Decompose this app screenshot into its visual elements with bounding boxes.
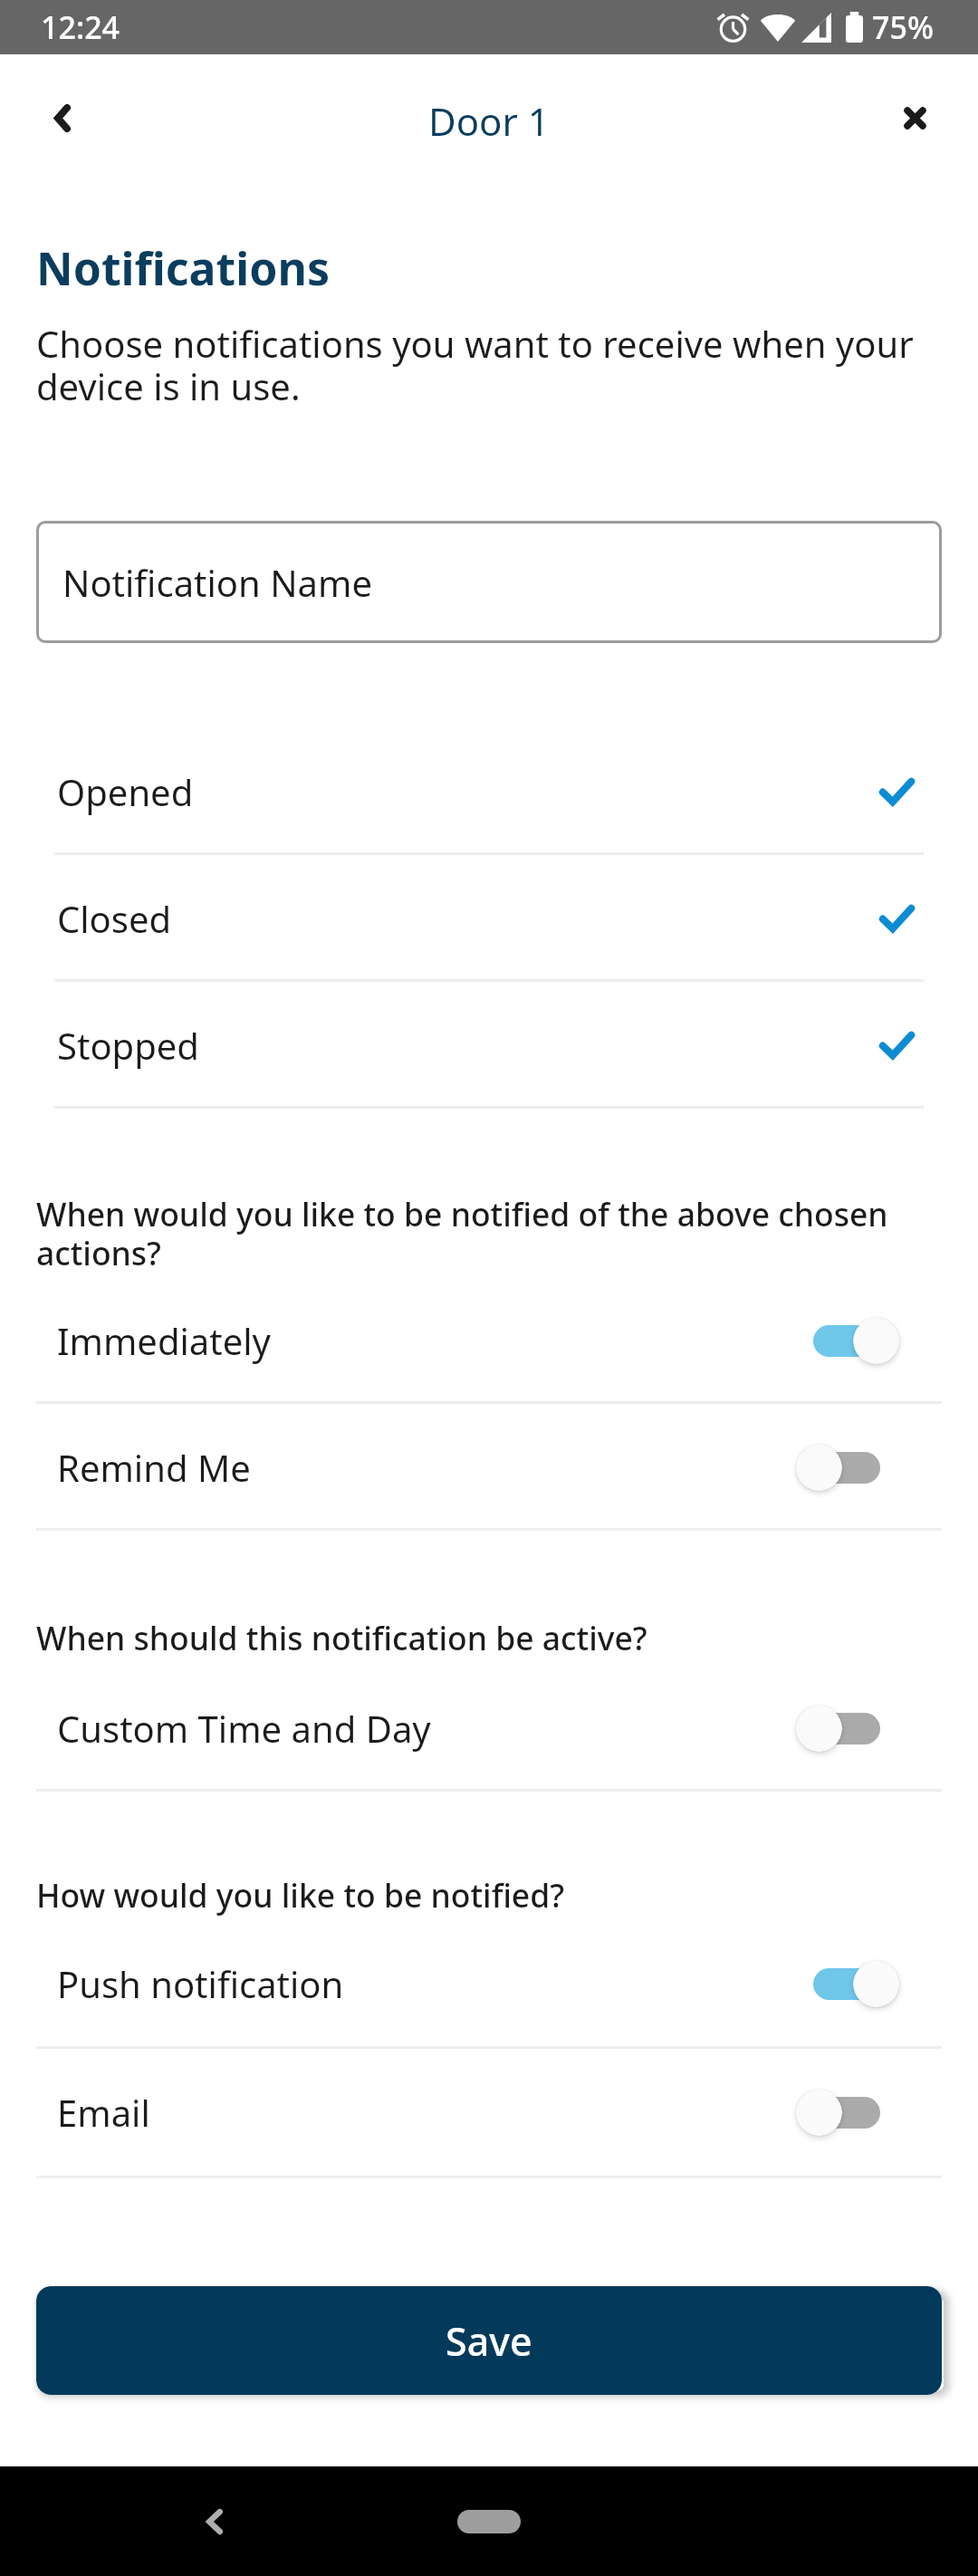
- button[interactable]: Opened: [0, 728, 978, 855]
- staticText: Immediately: [57, 1316, 271, 1365]
- staticText: Remind Me: [57, 1443, 251, 1492]
- button[interactable]: Closed: [0, 855, 978, 982]
- button[interactable]: Close: [886, 89, 944, 147]
- staticText: Notifications: [36, 237, 331, 299]
- staticText: Email: [57, 2088, 150, 2137]
- button[interactable]: Notification Name: [36, 521, 942, 643]
- button[interactable]: Remind Me: [0, 1404, 978, 1531]
- button[interactable]: Back: [34, 89, 91, 147]
- button[interactable]: Home: [457, 2510, 521, 2533]
- button[interactable]: Email: [0, 2046, 978, 2178]
- button[interactable]: Push notification: [0, 1918, 978, 2049]
- staticText: Closed: [57, 894, 172, 943]
- staticText: When would you like to be notified of th…: [36, 1192, 942, 1274]
- staticText: Notification Name: [62, 558, 372, 607]
- button[interactable]: Save: [36, 2286, 942, 2395]
- staticText: Choose notifications you want to receive…: [36, 319, 942, 411]
- staticText: When should this notification be active?: [36, 1616, 647, 1659]
- staticText: Push notification: [57, 1959, 344, 2008]
- button[interactable]: Back: [186, 2493, 244, 2551]
- staticText: Stopped: [57, 1021, 199, 1070]
- button[interactable]: Stopped: [0, 982, 978, 1109]
- staticText: Door 1: [428, 95, 550, 147]
- staticText: 75%: [872, 6, 934, 48]
- button[interactable]: Custom Time and Day: [0, 1665, 978, 1792]
- staticText: Custom Time and Day: [57, 1704, 431, 1753]
- staticText: Opened: [57, 767, 194, 816]
- button[interactable]: Immediately: [0, 1277, 978, 1404]
- staticText: How would you like to be notified?: [36, 1873, 565, 1917]
- staticText: Save: [446, 2314, 532, 2368]
- staticText: 12:24: [41, 6, 120, 48]
